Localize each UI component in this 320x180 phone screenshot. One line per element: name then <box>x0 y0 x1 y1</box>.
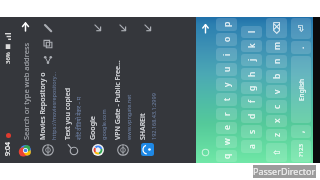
button[interactable]: Insert suggestion <box>90 20 106 36</box>
button[interactable]: a <box>241 140 262 153</box>
staticText: शॉर्ट वीडियो मेकर – म <box>75 97 82 140</box>
button[interactable]: k <box>241 40 262 52</box>
staticText: Google <box>88 116 98 140</box>
button[interactable]: Share <box>40 52 56 68</box>
staticText: x <box>271 118 283 123</box>
staticText: w <box>221 138 233 145</box>
button[interactable]: Send <box>200 23 211 34</box>
staticText: www.vpngate.net <box>125 94 132 140</box>
staticText: 9:04 <box>3 142 13 156</box>
button[interactable]: e <box>216 122 237 134</box>
button[interactable]: Edit <box>40 20 56 36</box>
staticText: 192.168.43.1:2999 <box>150 93 157 140</box>
button[interactable]: t <box>216 93 237 106</box>
staticText: 36% <box>4 52 12 64</box>
button[interactable]: Go <box>18 19 33 34</box>
button[interactable]: r <box>216 108 237 120</box>
button[interactable]: Google <box>85 17 110 163</box>
staticText: s <box>246 129 258 134</box>
staticText: . <box>295 46 307 49</box>
button[interactable]: English <box>291 56 311 123</box>
button[interactable]: . <box>291 41 311 54</box>
staticText: p <box>221 21 233 27</box>
button[interactable]: Keyboard settings <box>201 148 210 157</box>
button[interactable]: VPN Gate - Public Free VPN <box>110 17 135 163</box>
button[interactable]: v <box>266 85 287 98</box>
staticText: Text you copied <box>63 87 73 140</box>
button[interactable]: Search or type web address <box>16 17 35 163</box>
button[interactable]: , <box>291 125 311 138</box>
button[interactable]: SHAREit <box>135 17 160 163</box>
button[interactable]: n <box>266 55 287 68</box>
button[interactable]: z <box>266 129 287 141</box>
staticText: j <box>246 58 258 61</box>
button[interactable]: d <box>241 110 262 123</box>
button[interactable]: y <box>216 78 237 91</box>
staticText: ⇧ <box>272 148 282 156</box>
button[interactable]: p <box>216 18 237 31</box>
button[interactable]: Insert suggestion <box>140 20 156 36</box>
button[interactable]: ⌫ <box>266 18 287 38</box>
staticText: SHAREit <box>138 113 148 140</box>
button[interactable]: w <box>216 136 237 148</box>
staticText: Movies Repository o <box>38 72 48 140</box>
staticText: English <box>297 78 306 101</box>
staticText: ?123 <box>297 144 305 157</box>
button[interactable]: g <box>241 82 262 94</box>
staticText: q <box>221 153 233 159</box>
staticText: f <box>246 100 258 103</box>
staticText: ⌫ <box>272 21 282 34</box>
button[interactable]: Insert suggestion <box>115 20 131 36</box>
staticText: o <box>221 36 233 42</box>
staticText: m <box>271 42 283 50</box>
staticText: u <box>221 66 233 72</box>
button[interactable]: u <box>216 63 237 76</box>
staticText: i <box>221 53 233 56</box>
staticText: z <box>271 133 283 137</box>
button[interactable]: ?123 <box>291 140 311 162</box>
staticText: y <box>221 82 233 87</box>
button[interactable]: b <box>266 70 287 83</box>
staticText: VPN Gate - Public Free VPN <box>113 59 123 140</box>
staticText: r <box>221 112 233 116</box>
staticText: b <box>271 73 283 79</box>
staticText: h <box>246 71 258 77</box>
staticText: , <box>295 130 307 133</box>
button[interactable]: Text you copied <box>60 17 85 163</box>
button[interactable]: Movies Repository o <box>35 17 60 163</box>
staticText: v <box>271 89 283 94</box>
staticText: Search or type web address <box>21 42 31 140</box>
staticText: e <box>221 125 233 130</box>
staticText: t <box>221 97 233 101</box>
button[interactable]: s <box>241 125 262 138</box>
button[interactable]: x <box>266 115 287 127</box>
staticText: n <box>271 58 283 64</box>
staticText: d <box>246 113 258 119</box>
staticText: l <box>246 30 258 33</box>
staticText: k <box>246 43 258 48</box>
button[interactable]: ⏎ <box>291 18 311 39</box>
button[interactable]: h <box>241 68 262 80</box>
button[interactable]: o <box>216 33 237 46</box>
staticText: a <box>246 144 258 149</box>
button[interactable]: f <box>241 96 262 108</box>
staticText: c <box>271 104 283 109</box>
staticText: https://moviesrepository... <box>50 72 57 140</box>
staticText: ⏎ <box>296 24 306 32</box>
staticText: g <box>246 85 258 91</box>
button[interactable]: Copy <box>40 36 56 52</box>
button[interactable]: ⇧ <box>266 143 287 162</box>
button[interactable]: q <box>216 150 237 162</box>
staticText: google.com <box>100 109 107 140</box>
button[interactable]: l <box>241 26 262 38</box>
staticText: PasserDirectory <box>253 165 316 178</box>
button[interactable]: m <box>266 40 287 53</box>
button[interactable]: i <box>216 48 237 61</box>
button[interactable]: c <box>266 100 287 113</box>
button[interactable]: j <box>241 54 262 66</box>
